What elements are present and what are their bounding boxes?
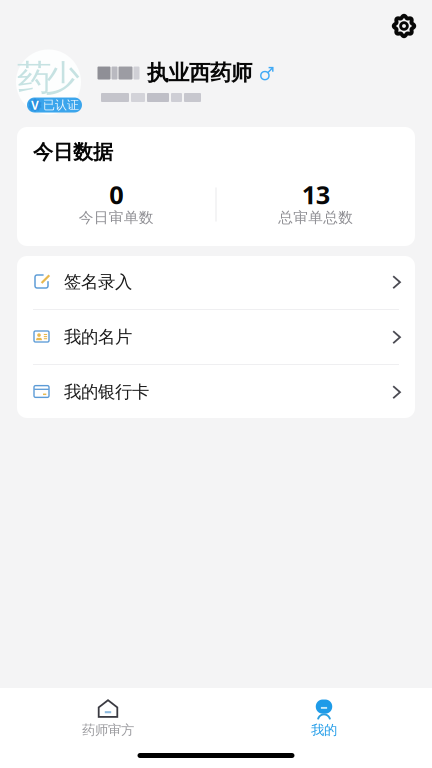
button[interactable]: 药师审方: [0, 688, 216, 741]
staticText: 签名录入: [64, 271, 132, 293]
staticText: 药: [17, 57, 52, 99]
staticText: 总审单总数: [278, 208, 353, 226]
staticText: 13: [302, 178, 330, 211]
staticText: 少: [45, 57, 80, 99]
button[interactable]: 签名录入: [17, 255, 415, 309]
button[interactable]: 我的银行卡: [17, 365, 415, 419]
staticText: 今日审单数: [79, 208, 154, 226]
staticText: 我的: [311, 722, 337, 738]
staticText: V: [31, 97, 39, 113]
staticText: 今日数据: [33, 140, 113, 164]
staticText: 0: [109, 178, 123, 211]
staticText: 执业西药师: [147, 60, 252, 86]
button[interactable]: 我的: [216, 688, 432, 741]
staticText: 药师审方: [82, 722, 134, 738]
button[interactable]: 我的名片: [17, 310, 415, 364]
staticText: 已认证: [43, 98, 79, 112]
button[interactable]: Settings: [384, 6, 424, 46]
staticText: 我的银行卡: [64, 381, 149, 403]
staticText: 我的名片: [64, 326, 132, 348]
